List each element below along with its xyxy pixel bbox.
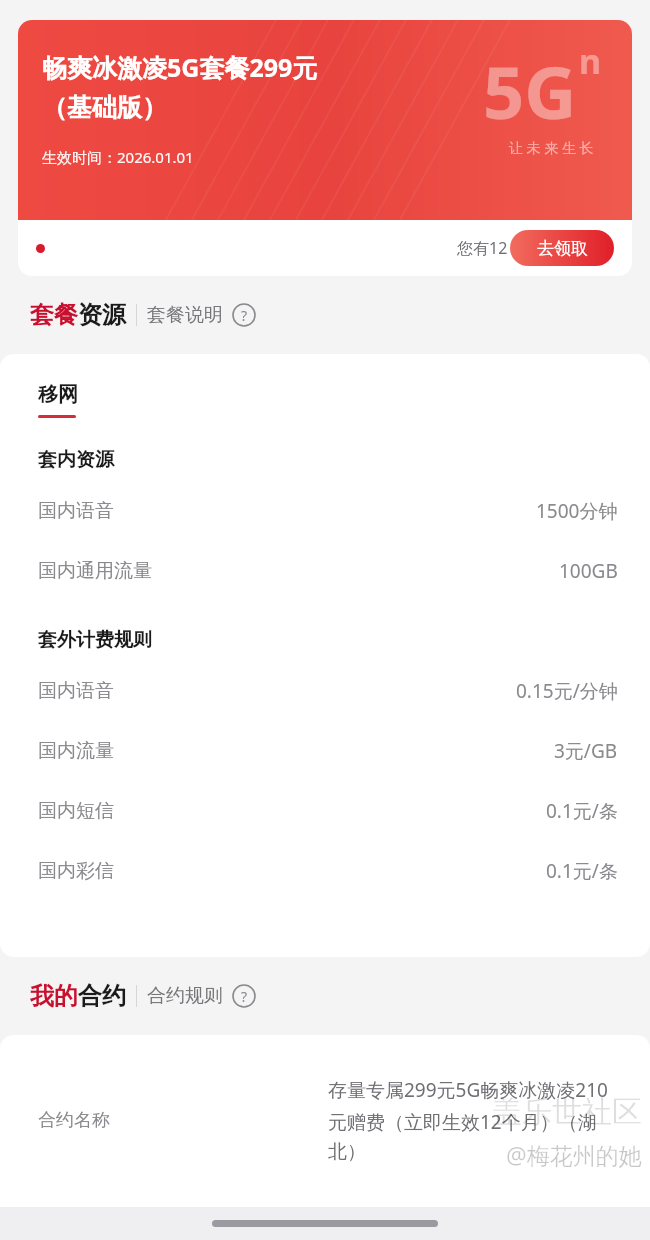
other: 说明 xyxy=(232,984,256,1008)
staticText: 100GB xyxy=(559,558,618,584)
staticText: 套外计费规则 xyxy=(38,628,152,652)
staticText: 套餐说明 xyxy=(147,303,223,327)
staticText: 套餐资源 xyxy=(30,300,126,330)
staticText: 国内彩信 xyxy=(38,859,114,883)
staticText: 存量专属299元5G畅爽冰激凌210元赠费（立即生效12个月）（湖北） xyxy=(328,1077,618,1164)
staticText: 盖乐世社区 xyxy=(492,1093,642,1131)
button[interactable]: 国内语音 xyxy=(38,678,618,704)
staticText: ? xyxy=(241,987,248,1006)
other: 说明 xyxy=(232,303,256,327)
staticText: 国内语音 xyxy=(38,499,114,523)
staticText: 畅爽冰激凌5G套餐299元 xyxy=(42,50,318,84)
staticText: 国内短信 xyxy=(38,799,114,823)
staticText: 国内流量 xyxy=(38,739,114,763)
staticText: 3元/GB xyxy=(554,738,618,764)
staticText: @梅花州的她 xyxy=(506,1139,642,1170)
button[interactable]: 国内流量 xyxy=(38,738,618,764)
button[interactable]: 国内语音 xyxy=(38,498,618,524)
staticText: ? xyxy=(241,306,248,325)
staticText: 我的合约 xyxy=(30,981,126,1011)
staticText: 0.15元/分钟 xyxy=(516,678,618,704)
staticText: 让 未 来 生 长 xyxy=(509,138,594,157)
button[interactable]: 合约规则 xyxy=(147,984,256,1008)
staticText: 国内语音 xyxy=(38,679,114,703)
staticText: 国内通用流量 xyxy=(38,559,152,583)
staticText: 您有12 xyxy=(457,237,508,259)
staticText: 生效时间：2026.01.01 xyxy=(42,147,194,167)
staticText: 0.1元/条 xyxy=(546,858,618,884)
staticText: 5G xyxy=(483,42,577,140)
staticText: 0.1元/条 xyxy=(546,798,618,824)
staticText: n xyxy=(579,38,602,84)
button[interactable]: 套餐说明 xyxy=(147,303,256,327)
button[interactable]: 去领取 xyxy=(510,230,614,266)
button[interactable]: 国内短信 xyxy=(38,798,618,824)
button[interactable]: 国内通用流量 xyxy=(38,558,618,584)
staticText: 合约规则 xyxy=(147,984,223,1008)
button[interactable]: 合约名称 xyxy=(38,1077,618,1164)
staticText: （基础版） xyxy=(42,92,167,123)
staticText: 1500分钟 xyxy=(536,498,618,524)
staticText: 去领取 xyxy=(537,238,588,259)
staticText: 合约名称 xyxy=(38,1109,110,1132)
staticText: 套内资源 xyxy=(38,448,114,472)
staticText: 移网 xyxy=(38,382,78,407)
button[interactable]: 您有12 xyxy=(18,220,632,276)
button[interactable]: 国内彩信 xyxy=(38,858,618,884)
